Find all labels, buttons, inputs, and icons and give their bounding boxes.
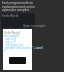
button[interactable]: Advertisement banner	[9, 57, 26, 64]
staticText: val sum = x+y	[4, 43, 24, 47]
button[interactable]: Open in compiler	[23, 24, 46, 28]
staticText: val y = 7	[4, 40, 16, 44]
staticText: Hello World	[4, 31, 20, 35]
staticText: explanation and can be	[2, 5, 35, 9]
staticText: opened in compiler	[2, 8, 30, 12]
staticText: fun main() {	[4, 34, 20, 38]
staticText: }	[4, 49, 6, 53]
staticText: Open in compiler	[23, 24, 46, 28]
staticText: Each program with an	[2, 1, 33, 5]
staticText: Hello World	[2, 14, 19, 18]
button[interactable]: Hello World sample	[1, 13, 35, 28]
staticText: println("The sum is: " + sum)	[4, 46, 43, 50]
staticText: val x = 5	[4, 37, 17, 41]
